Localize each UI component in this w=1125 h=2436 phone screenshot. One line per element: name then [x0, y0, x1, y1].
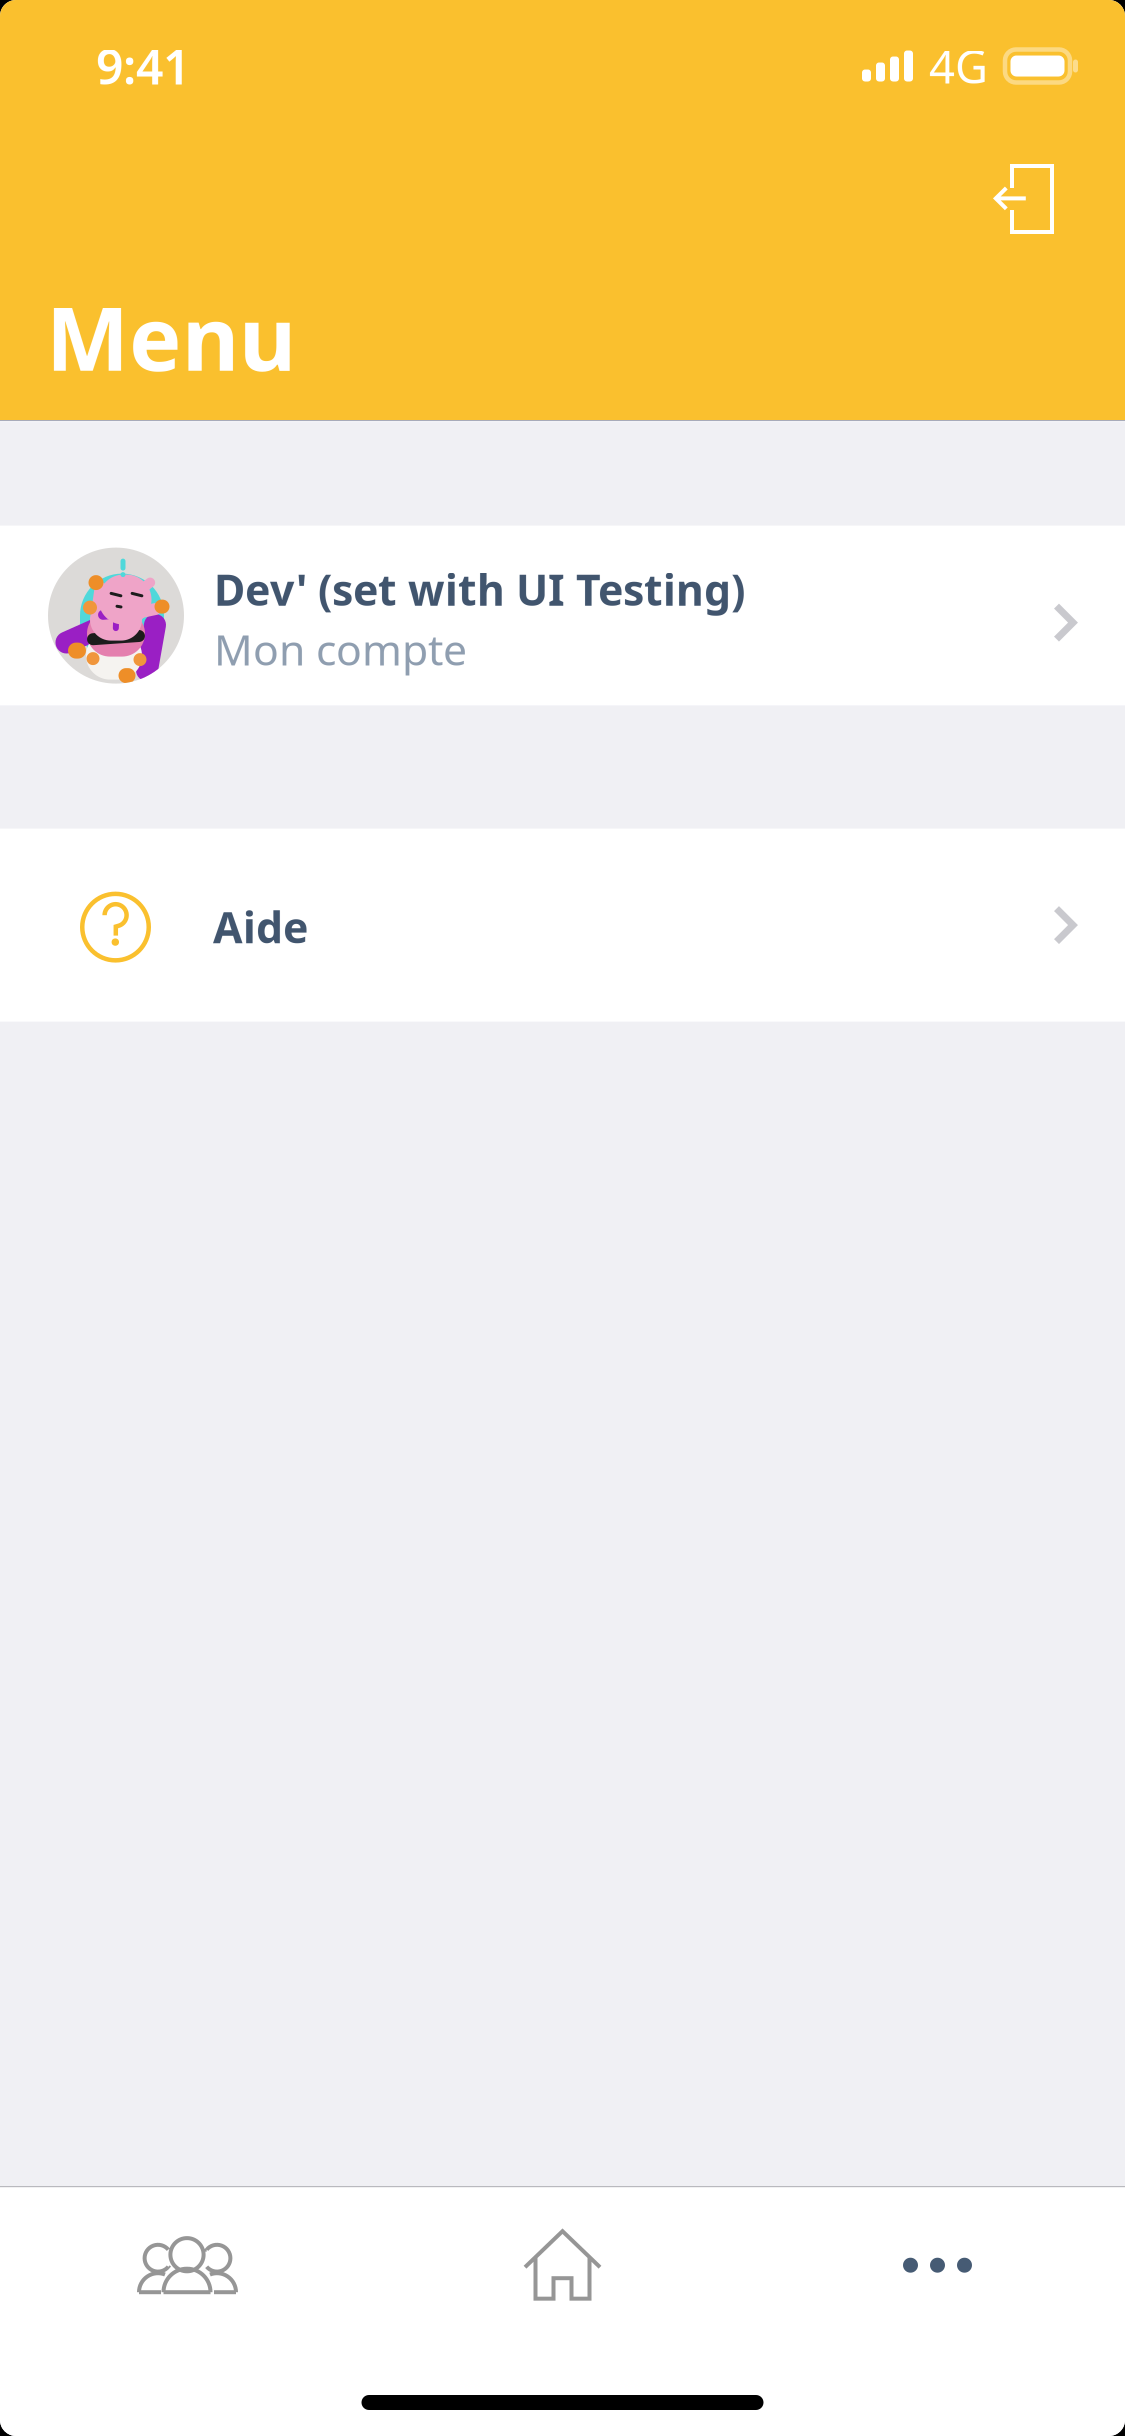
button[interactable]: Plus	[750, 2187, 1125, 2343]
staticText: Dev' (set with UI Testing)	[214, 561, 745, 618]
button[interactable]: Aide	[0, 829, 1125, 1022]
staticText: 4G	[929, 36, 988, 96]
button[interactable]: Dev' (set with UI Testing)	[0, 526, 1125, 706]
button[interactable]: Accueil	[375, 2187, 750, 2343]
staticText: 9:41	[96, 34, 190, 98]
staticText: Aide	[213, 898, 308, 955]
staticText: Menu	[46, 278, 296, 395]
button[interactable]: Contacts	[0, 2187, 375, 2343]
staticText: Mon compte	[214, 621, 467, 677]
button[interactable]: Se déconnecter	[994, 164, 1125, 234]
